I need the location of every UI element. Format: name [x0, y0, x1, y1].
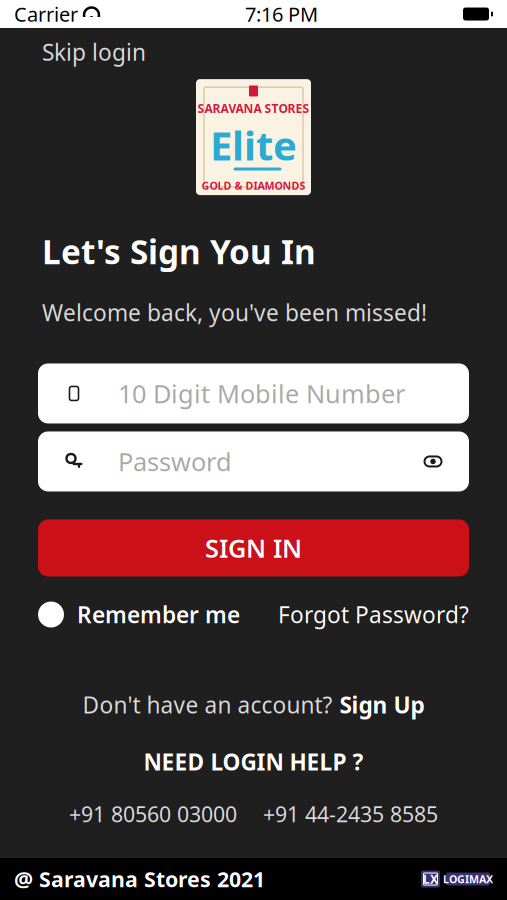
staticText: NEED LOGIN HELP ? — [143, 747, 363, 777]
staticText: @ Saravana Stores 2021 — [14, 865, 265, 893]
staticText: Forgot Password? — [278, 599, 469, 630]
button[interactable]: SIGN IN — [38, 519, 469, 576]
staticText: Don't have an account? — [82, 690, 332, 720]
staticText: Welcome back, you've been missed! — [42, 297, 427, 327]
staticText: 7:16 PM — [245, 1, 318, 27]
staticText: Sign Up — [339, 690, 424, 720]
staticText: Let's Sign You In — [42, 229, 316, 273]
staticText: Skip login — [42, 37, 146, 67]
button[interactable]: +91 80560 03000 — [69, 800, 237, 828]
staticText: LX — [423, 871, 438, 887]
staticText: 10 Digit Mobile Number — [118, 377, 405, 410]
staticText: Remember me — [77, 599, 240, 630]
button[interactable]: Don't have an account? — [82, 686, 424, 724]
staticText: Carrier — [14, 1, 78, 27]
staticText: Password — [118, 445, 232, 478]
staticText: LOGIMAX — [443, 872, 493, 886]
staticText: Elite — [210, 118, 297, 171]
button[interactable]: Remember me — [38, 593, 240, 636]
button[interactable]: Skip login — [38, 33, 150, 71]
button[interactable]: Forgot Password? — [278, 593, 469, 636]
staticText: SIGN IN — [205, 531, 302, 565]
staticText: +91 44-2435 8585 — [263, 800, 438, 828]
staticText: SARAVANA STORES — [197, 100, 309, 116]
staticText: GOLD & DIAMONDS — [201, 178, 305, 193]
button[interactable]: +91 44-2435 8585 — [263, 800, 438, 828]
staticText: +91 80560 03000 — [69, 800, 237, 828]
button[interactable]: Show password — [417, 448, 449, 474]
